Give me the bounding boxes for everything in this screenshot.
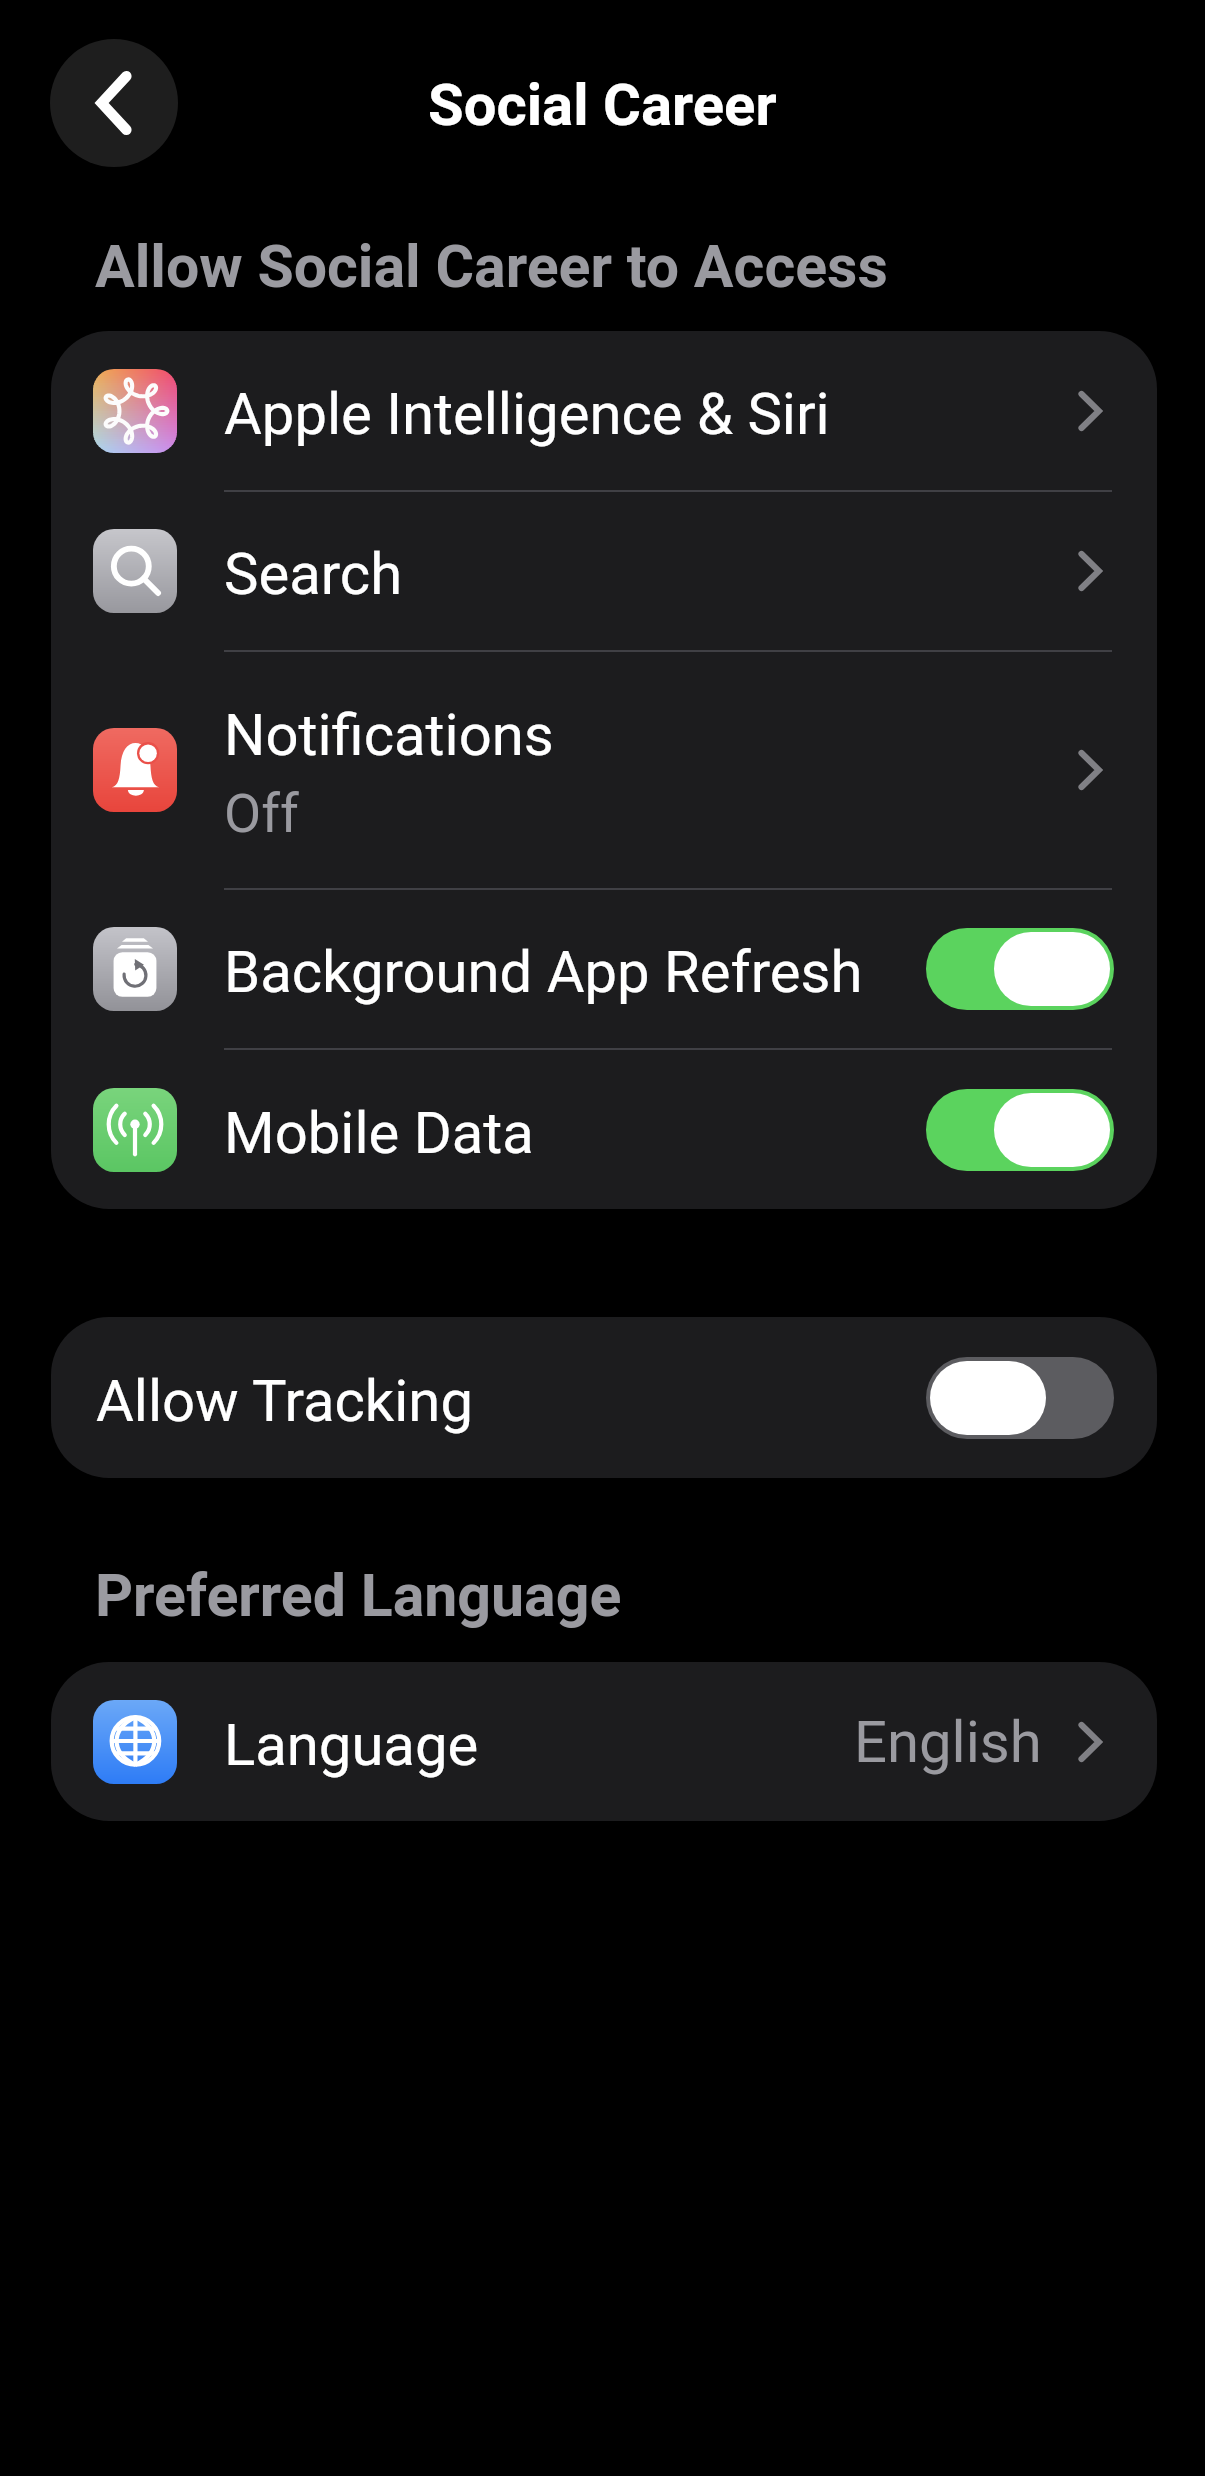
staticText: Apple Intelligence & Siri (224, 380, 830, 448)
staticText: Allow Tracking (96, 1367, 473, 1435)
staticText: English (854, 1708, 1042, 1776)
staticText: Mobile Data (224, 1099, 534, 1167)
button[interactable]: Toggle on (926, 928, 1114, 1010)
button[interactable]: Toggle off (926, 1357, 1114, 1439)
button[interactable]: Toggle on (926, 1089, 1114, 1171)
staticText: Search (224, 540, 403, 608)
staticText: Social Career (428, 71, 777, 139)
button[interactable]: Mobile Data (51, 1050, 1157, 1209)
button[interactable]: Back (50, 39, 178, 167)
staticText: Notifications (224, 701, 554, 769)
staticText: Off (224, 782, 299, 845)
button[interactable]: Background App Refresh (51, 890, 1157, 1048)
button[interactable]: Apple Intelligence & Siri (51, 331, 1157, 490)
button[interactable]: Search (51, 492, 1157, 650)
button[interactable]: Notifications (51, 652, 1157, 888)
staticText: Language (224, 1711, 479, 1779)
button[interactable]: Language (51, 1662, 1157, 1821)
button[interactable]: Allow Tracking (51, 1317, 1157, 1478)
staticText: Preferred Language (95, 1561, 622, 1630)
staticText: Allow Social Career to Access (95, 232, 888, 301)
staticText: Background App Refresh (224, 938, 863, 1006)
